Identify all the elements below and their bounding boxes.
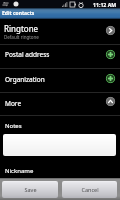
button[interactable]: Collapse: [106, 97, 115, 106]
button[interactable]: Select ringtone: [106, 26, 115, 35]
staticText: Ringtone: [4, 23, 39, 34]
button[interactable]: More: [0, 93, 120, 115]
button[interactable]: Ringtone: [0, 19, 120, 44]
staticText: Postal address: [5, 50, 50, 59]
button[interactable]: Add: [106, 74, 115, 83]
button[interactable]: Save: [2, 181, 58, 198]
staticText: Cancel: [81, 186, 99, 193]
staticText: Nickname: [5, 167, 34, 175]
staticText: Notes: [5, 122, 22, 130]
staticText: 11:12 AM: [93, 1, 117, 8]
button[interactable]: Organization: [0, 69, 120, 92]
staticText: Save: [24, 186, 37, 193]
button[interactable]: Add: [106, 50, 115, 59]
staticText: More: [5, 99, 22, 108]
staticText: Default ringtone: [4, 34, 39, 40]
button[interactable]: Cancel: [62, 181, 117, 198]
button[interactable]: Postal address: [0, 45, 120, 68]
staticText: Organization: [5, 75, 45, 84]
button[interactable]: [3, 134, 116, 156]
staticText: Edit contacts: [2, 10, 35, 17]
